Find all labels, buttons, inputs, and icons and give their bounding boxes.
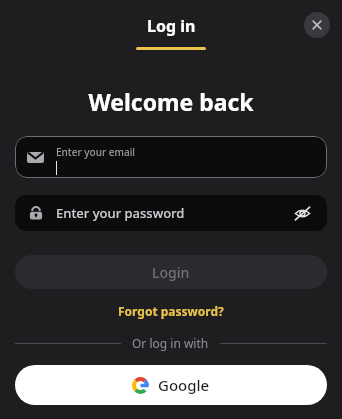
staticText: Login: [152, 263, 190, 282]
button[interactable]: Forgot password?: [15, 303, 327, 319]
staticText: Log in: [147, 15, 196, 37]
button[interactable]: Enter your password: [15, 195, 327, 231]
staticText: Enter your password: [56, 204, 290, 222]
button[interactable]: Show password: [290, 201, 314, 225]
button[interactable]: Log in: [136, 0, 206, 50]
staticText: Enter your email: [56, 145, 136, 159]
staticText: Or log in with: [132, 335, 209, 351]
staticText: Welcome back: [15, 86, 327, 117]
staticText: Forgot password?: [118, 303, 224, 319]
button[interactable]: Login: [15, 255, 327, 289]
button[interactable]: Google: [15, 365, 327, 405]
staticText: Google: [158, 375, 210, 395]
button[interactable]: Close: [304, 12, 330, 38]
button[interactable]: Enter your email: [15, 136, 327, 178]
